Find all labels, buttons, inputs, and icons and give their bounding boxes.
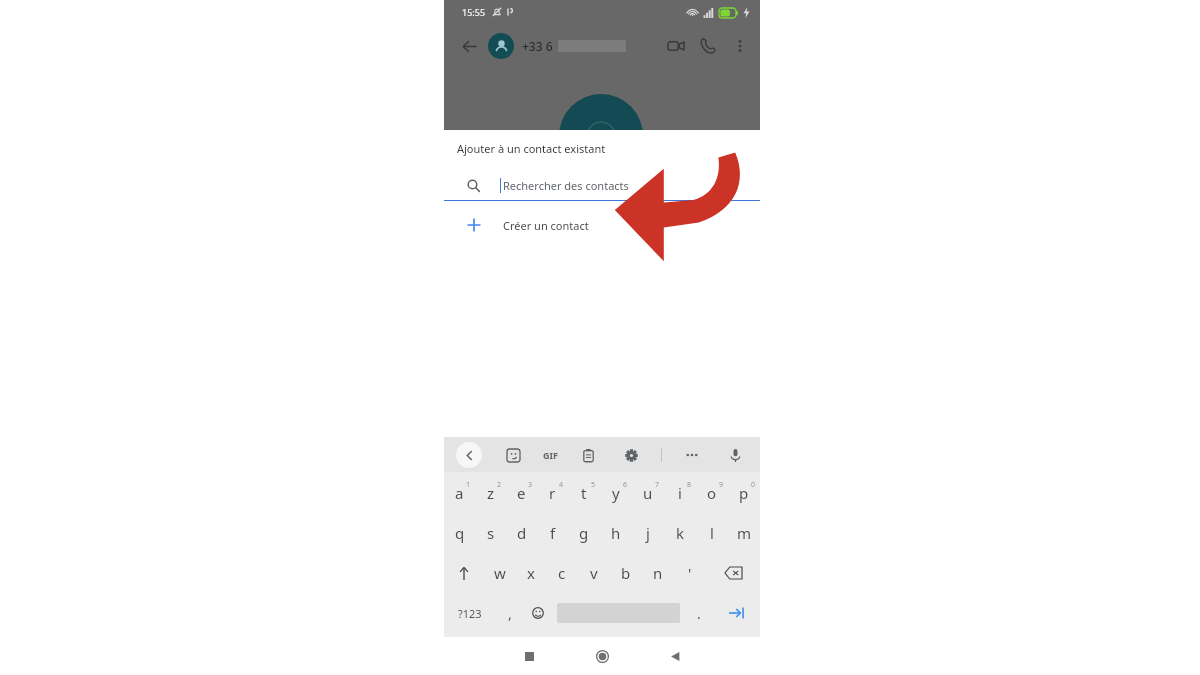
staticText: 3: [528, 480, 533, 490]
staticText: Ajouter à un contact existant: [457, 141, 606, 156]
staticText: m: [737, 523, 752, 543]
button[interactable]: c: [546, 553, 578, 593]
button[interactable]: i: [664, 472, 696, 513]
staticText: t: [581, 483, 587, 503]
staticText: o: [707, 483, 717, 503]
button[interactable]: .: [685, 593, 713, 633]
button[interactable]: n: [642, 553, 674, 593]
button[interactable]: o: [696, 472, 728, 513]
staticText: GIF: [543, 449, 558, 461]
staticText: y: [612, 483, 620, 503]
button[interactable]: f: [537, 513, 568, 553]
button[interactable]: Aperçu: [512, 639, 546, 673]
button[interactable]: x: [515, 553, 546, 593]
button[interactable]: GIF: [543, 449, 558, 461]
button[interactable]: ?123: [444, 593, 496, 633]
button[interactable]: u: [632, 472, 664, 513]
button[interactable]: y: [600, 472, 632, 513]
staticText: s: [487, 523, 495, 543]
staticText: d: [517, 523, 527, 543]
button[interactable]: g: [568, 513, 600, 553]
button[interactable]: e: [506, 472, 537, 513]
button[interactable]: j: [632, 513, 664, 553]
button[interactable]: b: [610, 553, 642, 593]
button[interactable]: Emoji: [524, 593, 552, 633]
staticText: b: [621, 563, 631, 583]
staticText: 2: [497, 480, 502, 490]
button[interactable]: +33 6: [488, 33, 626, 59]
staticText: f: [550, 523, 556, 543]
staticText: 5: [591, 480, 596, 490]
staticText: 6: [623, 480, 628, 490]
staticText: ,: [508, 604, 512, 623]
staticText: c: [558, 563, 566, 583]
button[interactable]: Appel vidéo: [660, 30, 692, 62]
staticText: g: [579, 523, 589, 543]
button[interactable]: s: [475, 513, 506, 553]
staticText: x: [527, 563, 535, 583]
staticText: i: [678, 483, 682, 503]
button[interactable]: z: [475, 472, 506, 513]
button[interactable]: Stickers: [500, 442, 526, 468]
button[interactable]: h: [600, 513, 632, 553]
button[interactable]: t: [568, 472, 600, 513]
button[interactable]: p: [728, 472, 760, 513]
staticText: 0: [751, 480, 756, 490]
button[interactable]: ,: [496, 593, 524, 633]
staticText: e: [517, 483, 526, 503]
button[interactable]: a: [444, 472, 475, 513]
staticText: 1: [466, 480, 471, 490]
staticText: q: [455, 523, 465, 543]
button[interactable]: q: [444, 513, 475, 553]
button[interactable]: Créer un contact: [444, 208, 760, 242]
staticText: v: [590, 563, 598, 583]
button[interactable]: Paramètres: [618, 442, 644, 468]
staticText: 8: [687, 480, 692, 490]
button[interactable]: Majuscule: [444, 553, 484, 593]
staticText: a: [455, 483, 464, 503]
staticText: 4: [559, 480, 564, 490]
button[interactable]: d: [506, 513, 537, 553]
button[interactable]: v: [578, 553, 610, 593]
button[interactable]: Suivant: [713, 593, 760, 633]
staticText: 7: [655, 480, 660, 490]
button[interactable]: Presse-papiers: [575, 442, 601, 468]
button[interactable]: Plus d'options: [724, 30, 756, 62]
staticText: Rechercher des contacts: [503, 178, 629, 193]
button[interactable]: Retour: [658, 639, 692, 673]
button[interactable]: Supprimer: [706, 553, 760, 593]
button[interactable]: r: [537, 472, 568, 513]
staticText: h: [611, 523, 621, 543]
staticText: l: [710, 523, 714, 543]
button[interactable]: Retour: [454, 31, 484, 61]
button[interactable]: ': [674, 553, 706, 593]
staticText: r: [549, 483, 556, 503]
staticText: u: [643, 483, 653, 503]
staticText: +33 6: [522, 38, 553, 54]
staticText: ?123: [458, 606, 482, 621]
button[interactable]: Retour clavier: [456, 442, 482, 468]
staticText: z: [487, 483, 495, 503]
staticText: w: [494, 563, 506, 583]
button[interactable]: k: [664, 513, 696, 553]
staticText: 15:55: [462, 6, 486, 18]
button[interactable]: Rechercher des contacts: [444, 170, 760, 200]
button[interactable]: m: [728, 513, 760, 553]
button[interactable]: Plus: [679, 442, 705, 468]
button[interactable]: Accueil: [585, 639, 619, 673]
staticText: .: [697, 604, 701, 623]
button[interactable]: w: [484, 553, 515, 593]
button[interactable]: Appeler: [692, 30, 724, 62]
staticText: 9: [719, 480, 724, 490]
staticText: n: [653, 563, 663, 583]
button[interactable]: Saisie vocale: [722, 442, 748, 468]
staticText: ': [688, 563, 692, 583]
staticText: Créer un contact: [503, 218, 589, 233]
button[interactable]: l: [696, 513, 728, 553]
staticText: p: [739, 483, 749, 503]
staticText: j: [646, 523, 650, 543]
staticText: k: [676, 523, 685, 543]
